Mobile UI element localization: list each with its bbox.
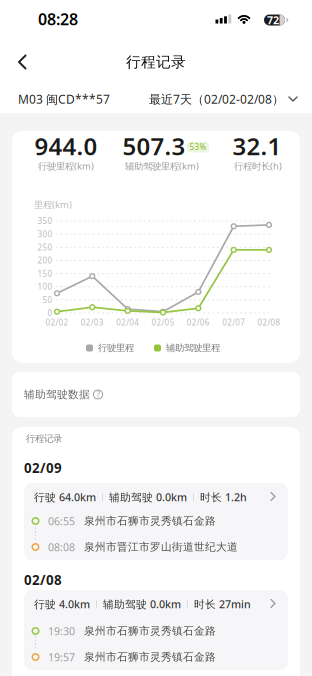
button[interactable]: M03 闽CD***57 bbox=[18, 85, 110, 113]
staticText: 0 bbox=[47, 308, 52, 318]
staticText: 行驶里程 bbox=[98, 342, 134, 354]
staticText: 辅助驾驶里程(km) bbox=[125, 160, 199, 172]
staticText: 辅助驾驶 0.0km bbox=[103, 597, 181, 611]
staticText: 250 bbox=[37, 242, 52, 253]
button[interactable]: 最近7天（02/02-02/08） bbox=[149, 85, 298, 113]
staticText: 02/02 bbox=[45, 317, 68, 328]
staticText: 02/09 bbox=[24, 459, 62, 477]
staticText: 行驶里程(km) bbox=[38, 160, 94, 172]
staticText: 06:55 bbox=[48, 514, 75, 528]
staticText: 150 bbox=[37, 268, 52, 279]
staticText: 02/08 bbox=[24, 571, 62, 589]
staticText: 行程记录 bbox=[26, 433, 62, 444]
staticText: 300 bbox=[37, 229, 52, 239]
staticText: 19:57 bbox=[48, 650, 75, 664]
staticText: 19:30 bbox=[48, 624, 75, 638]
staticText: 02/06 bbox=[187, 317, 210, 328]
staticText: 辅助驾驶里程 bbox=[166, 342, 220, 354]
staticText: ? bbox=[96, 389, 99, 400]
staticText: 时长 27min bbox=[194, 597, 251, 611]
staticText: 泉州市晋江市罗山街道世纪大道 bbox=[84, 540, 238, 553]
staticText: M03 闽CD***57 bbox=[18, 91, 110, 107]
staticText: 02/03 bbox=[81, 317, 104, 328]
staticText: 最近7天（02/02-02/08） bbox=[149, 91, 284, 107]
button[interactable]: 辅助驾驶数据 bbox=[12, 372, 300, 417]
staticText: 泉州市石狮市灵秀镇石金路 bbox=[84, 650, 216, 663]
staticText: 200 bbox=[37, 255, 52, 266]
staticText: 08:28 bbox=[38, 8, 78, 30]
staticText: 行驶 4.0km bbox=[34, 597, 90, 611]
staticText: 02/04 bbox=[116, 317, 139, 328]
staticText: 944.0 bbox=[34, 130, 97, 162]
staticText: 里程(km) bbox=[34, 198, 72, 211]
staticText: 行驶 64.0km bbox=[34, 490, 96, 504]
staticText: 72 bbox=[267, 13, 279, 27]
staticText: 辅助驾驶数据 bbox=[24, 388, 90, 401]
staticText: 53% bbox=[189, 142, 206, 152]
staticText: 350 bbox=[37, 216, 52, 226]
staticText: 行程记录 bbox=[126, 53, 186, 71]
staticText: 32.1 bbox=[232, 130, 281, 162]
staticText: 泉州市石狮市灵秀镇石金路 bbox=[84, 624, 216, 637]
staticText: 辅助驾驶 0.0km bbox=[109, 490, 187, 504]
staticText: 100 bbox=[37, 281, 52, 292]
staticText: 行程时长(h) bbox=[234, 160, 282, 172]
button[interactable]: Back bbox=[0, 0, 44, 44]
button[interactable]: 行驶 4.0km bbox=[24, 590, 288, 670]
staticText: 02/05 bbox=[151, 317, 174, 328]
staticText: 507.3 bbox=[122, 130, 185, 162]
staticText: 08:08 bbox=[48, 540, 75, 554]
staticText: 时长 1.2h bbox=[200, 490, 247, 504]
button[interactable]: 行驶 64.0km bbox=[24, 483, 288, 560]
staticText: 50 bbox=[42, 294, 52, 305]
staticText: 02/08 bbox=[257, 317, 280, 328]
staticText: 02/07 bbox=[222, 317, 245, 328]
staticText: 泉州市石狮市灵秀镇石金路 bbox=[84, 514, 216, 527]
